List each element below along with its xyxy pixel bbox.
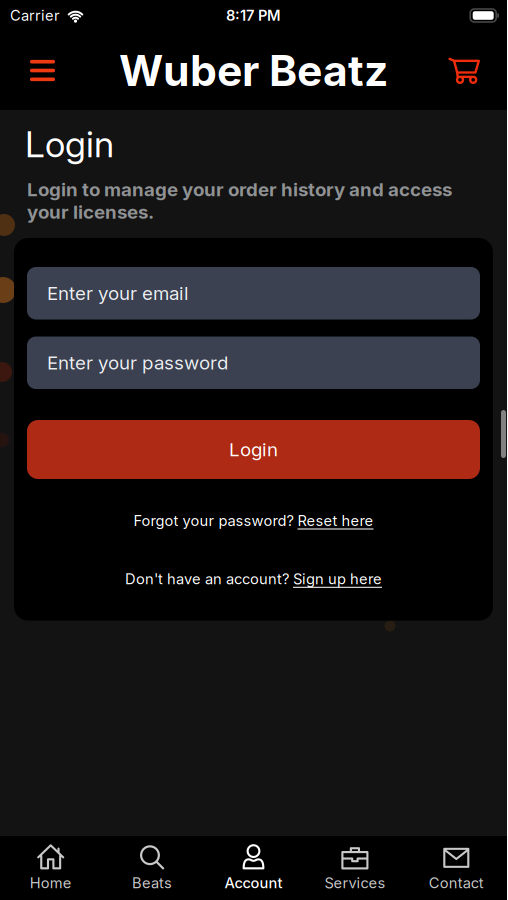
button[interactable]: Forgot your password? Reset here [133, 512, 373, 529]
staticText: Enter your email [47, 282, 189, 304]
staticText: 8:17 PM [226, 7, 281, 24]
staticText: Contact [429, 874, 484, 892]
button[interactable]: Beats [101, 844, 203, 892]
button[interactable]: Cart [449, 41, 507, 99]
staticText: Account [224, 874, 282, 892]
staticText: Login to manage your order history and a… [27, 178, 452, 223]
button[interactable]: Contact [406, 844, 507, 892]
staticText: Login [229, 438, 278, 460]
button[interactable]: Login [27, 420, 480, 479]
button[interactable]: Don't have an account? Sign up here [125, 570, 382, 588]
button[interactable]: Menu [0, 42, 55, 99]
button[interactable]: Enter your password [27, 336, 480, 389]
button[interactable]: Home [0, 844, 101, 892]
staticText: Don't have an account? Sign up here [125, 570, 382, 588]
button[interactable]: Account [203, 844, 304, 892]
staticText: Login [25, 123, 114, 165]
staticText: Wuber Beatz [119, 45, 388, 96]
staticText: Beats [132, 874, 172, 892]
button[interactable]: Services [304, 844, 406, 892]
staticText: Carrier [10, 7, 60, 24]
staticText: Forgot your password? Reset here [133, 512, 373, 529]
staticText: Services [324, 874, 385, 892]
staticText: Home [30, 874, 72, 892]
staticText: Enter your password [47, 352, 228, 374]
button[interactable]: Enter your email [27, 267, 480, 319]
